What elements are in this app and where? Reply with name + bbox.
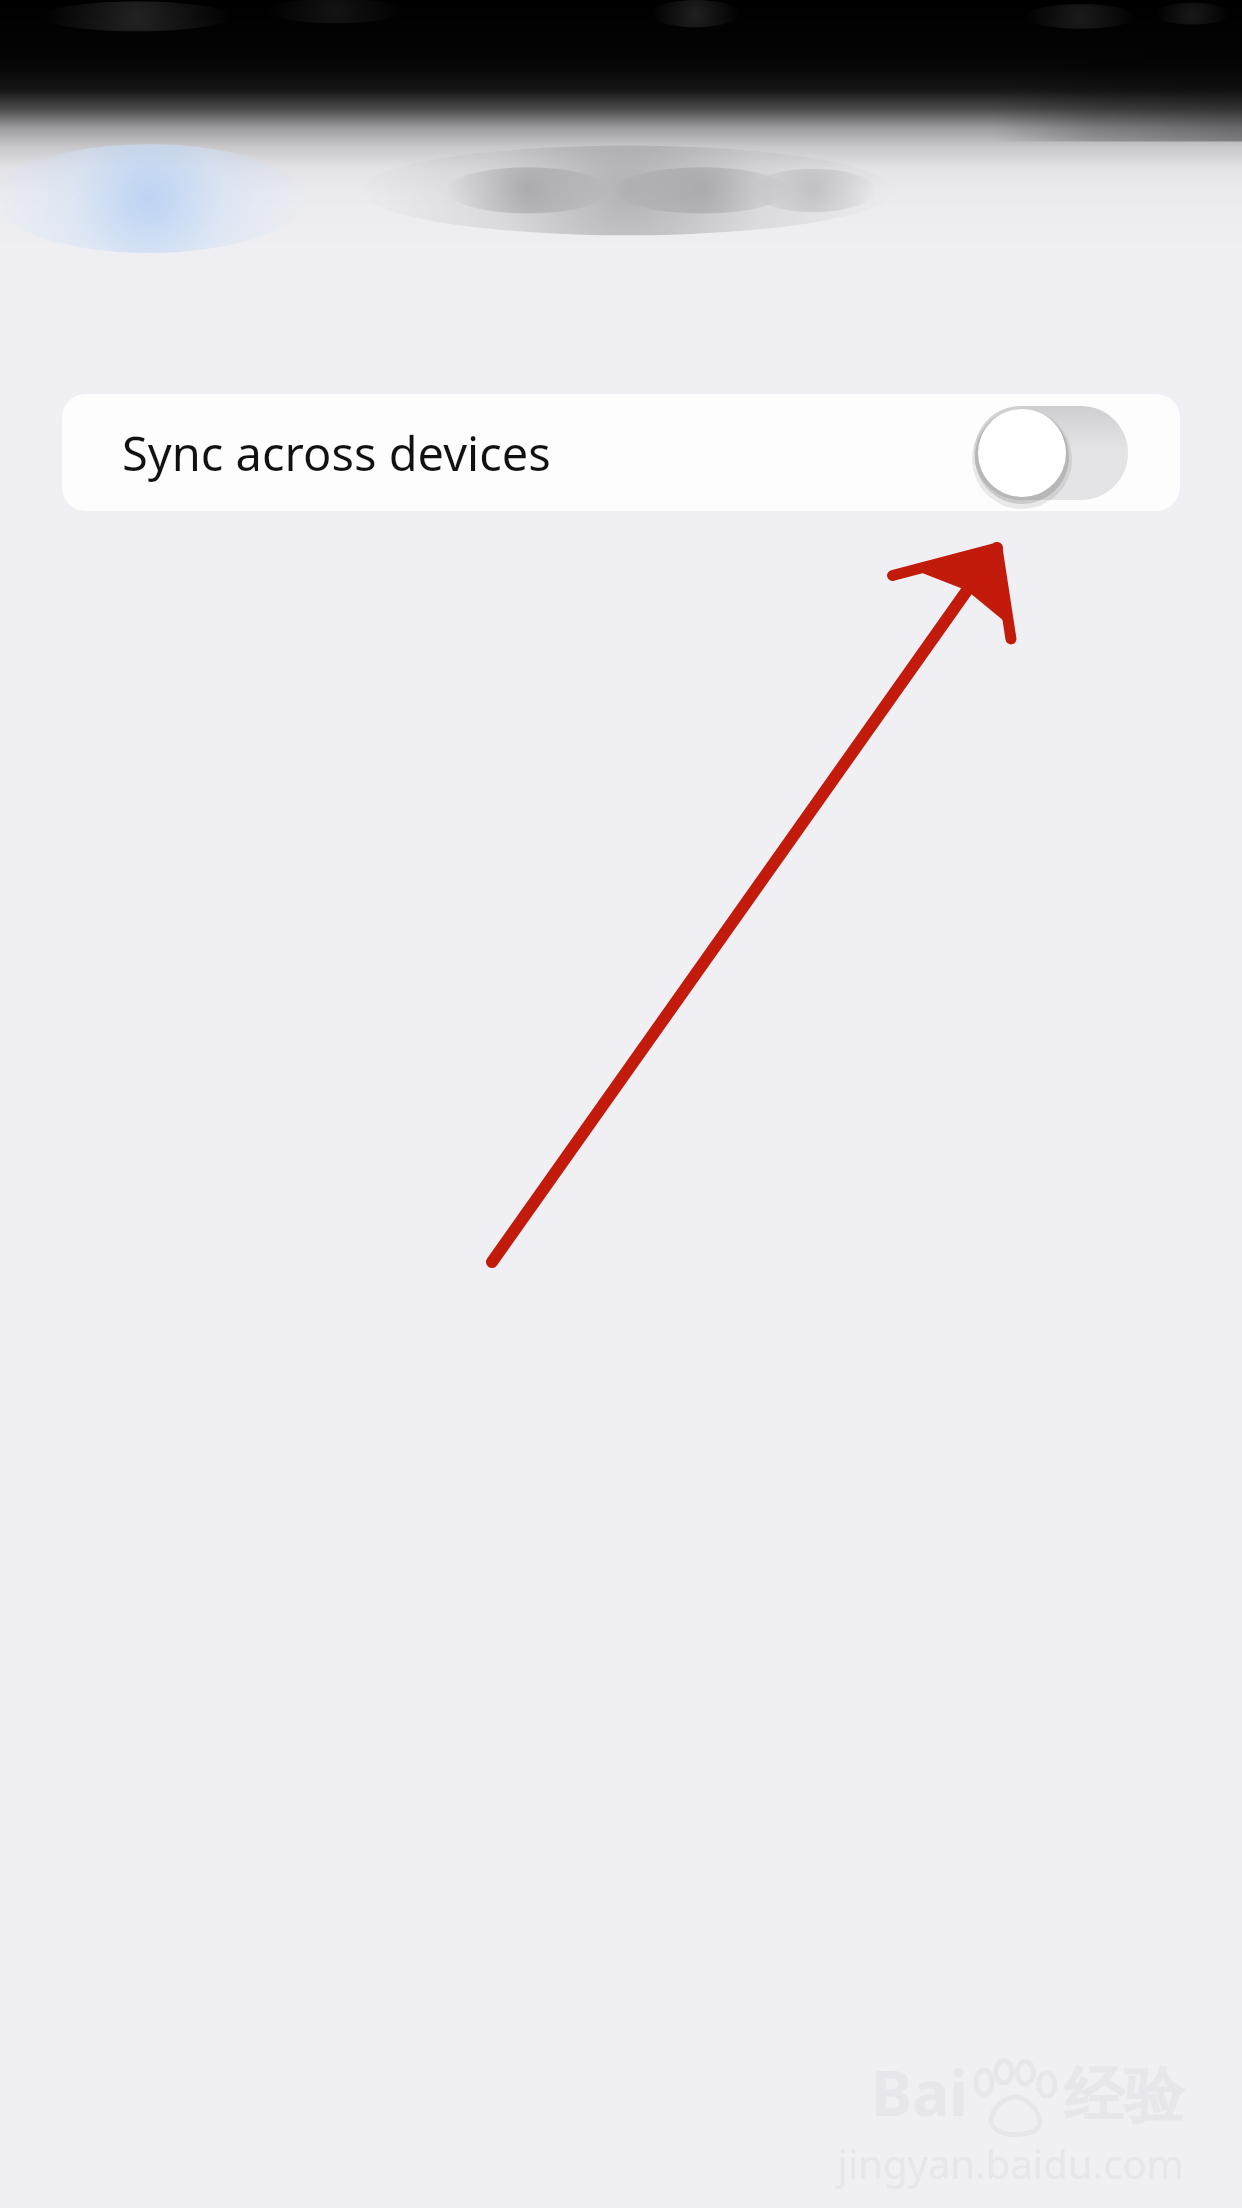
button[interactable]: Sync across devices toggle, off (974, 406, 1128, 500)
button[interactable]: Sync across devices (62, 394, 1180, 511)
staticText: jingyan.baidu.com (837, 2136, 1184, 2190)
button[interactable]: Back (30, 150, 280, 246)
staticText: Sync across devices (122, 421, 551, 485)
staticText: 经验 (1064, 2058, 1184, 2134)
staticText: Bai (871, 2050, 968, 2134)
